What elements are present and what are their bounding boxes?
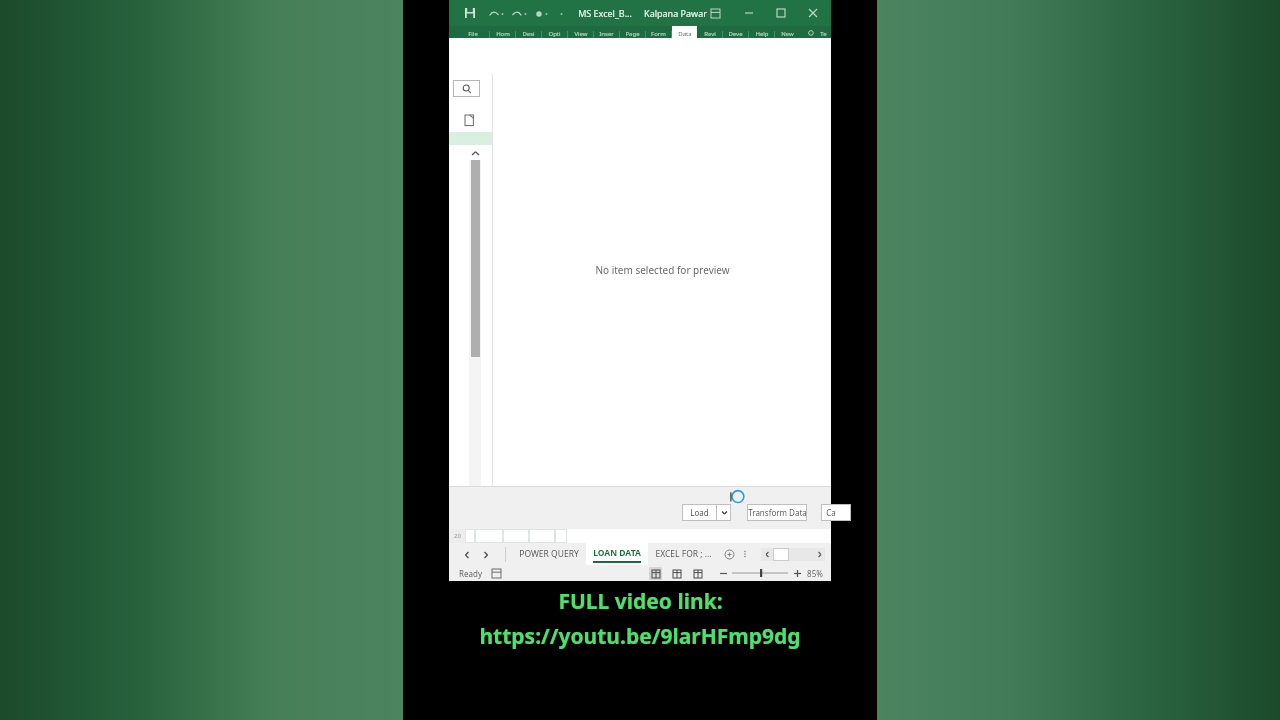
staticText: 20 [454,532,461,540]
staticText: Inser [599,30,614,38]
button[interactable]: Desi [516,26,541,38]
button[interactable]: Save [463,6,477,20]
staticText: 85% [807,568,823,579]
staticText: Te [820,30,827,38]
button[interactable]: Close [805,5,821,21]
button[interactable]: Minimize [741,5,757,21]
button[interactable]: Page break preview [691,567,704,580]
button[interactable]: POWER QUERY [512,543,586,565]
staticText: Transform Data [748,507,807,518]
button[interactable]: View [568,26,593,38]
button[interactable]: EXCEL FOR ; ... [648,543,719,565]
button[interactable]: Opti [542,26,567,38]
staticText: Hom [496,30,510,38]
staticText: Revi [704,30,716,38]
button[interactable]: Zoom in [792,568,802,578]
button[interactable]: Inser [594,26,619,38]
button[interactable]: Page [620,26,645,38]
button[interactable]: LOAN DATA [586,543,648,565]
button[interactable]: Revi [697,26,722,38]
staticText: LOAN DATA [593,547,641,559]
button[interactable]: Ribbon display options [707,5,723,21]
button[interactable]: Redo [510,7,523,20]
button[interactable]: Page layout view [670,567,683,580]
button[interactable]: Zoom slider [732,568,788,578]
button[interactable]: Maximize [773,5,789,21]
button[interactable]: Previous sheet [461,549,472,560]
button[interactable]: File [457,26,489,38]
button[interactable]: Touch mode [533,8,544,19]
staticText: Data [678,30,692,38]
staticText: File [468,30,478,38]
button[interactable]: Form [646,26,671,38]
button[interactable]: Load [682,504,716,521]
staticText: https://youtu.be/9larHFmp9dg [479,622,801,651]
button[interactable]: Undo [487,7,500,20]
button[interactable]: Load options [717,504,731,521]
button[interactable]: Data [672,26,697,38]
staticText: Ready [459,568,482,579]
button[interactable]: Deve [723,26,748,38]
staticText: New [781,30,794,38]
button[interactable]: Transform Data [747,504,807,521]
button[interactable]: Zoom out [718,568,728,578]
button[interactable]: New [775,26,800,38]
staticText: Help [755,30,769,38]
button[interactable]: Normal view [649,567,662,580]
staticText: Form [651,30,666,38]
staticText: Load [690,507,709,518]
button[interactable]: Scroll right [813,548,825,561]
staticText: FULL video link: [558,587,723,616]
button[interactable]: Workbook [465,115,477,127]
button[interactable]: Next sheet [480,549,491,560]
staticText: Kalpana Pawar [644,7,707,19]
staticText: Page [625,30,640,38]
button[interactable]: New sheet [723,548,735,560]
button[interactable]: Search [453,80,480,97]
staticText: EXCEL FOR ; ... [655,548,712,560]
staticText: Ca [826,507,836,518]
staticText: No item selected for preview [595,263,730,277]
staticText: Desi [522,30,535,38]
button[interactable]: Hom [490,26,515,38]
staticText: View [574,30,588,38]
button[interactable]: Help [749,26,774,38]
staticText: MS Excel_B... [578,7,632,19]
button[interactable]: Ca [821,504,851,521]
staticText: POWER QUERY [519,548,579,560]
staticText: Opti [548,30,561,38]
button[interactable]: Search [806,28,816,38]
button[interactable]: Scroll left [761,548,773,561]
staticText: Deve [728,30,743,38]
button[interactable]: Scroll up [469,146,481,160]
